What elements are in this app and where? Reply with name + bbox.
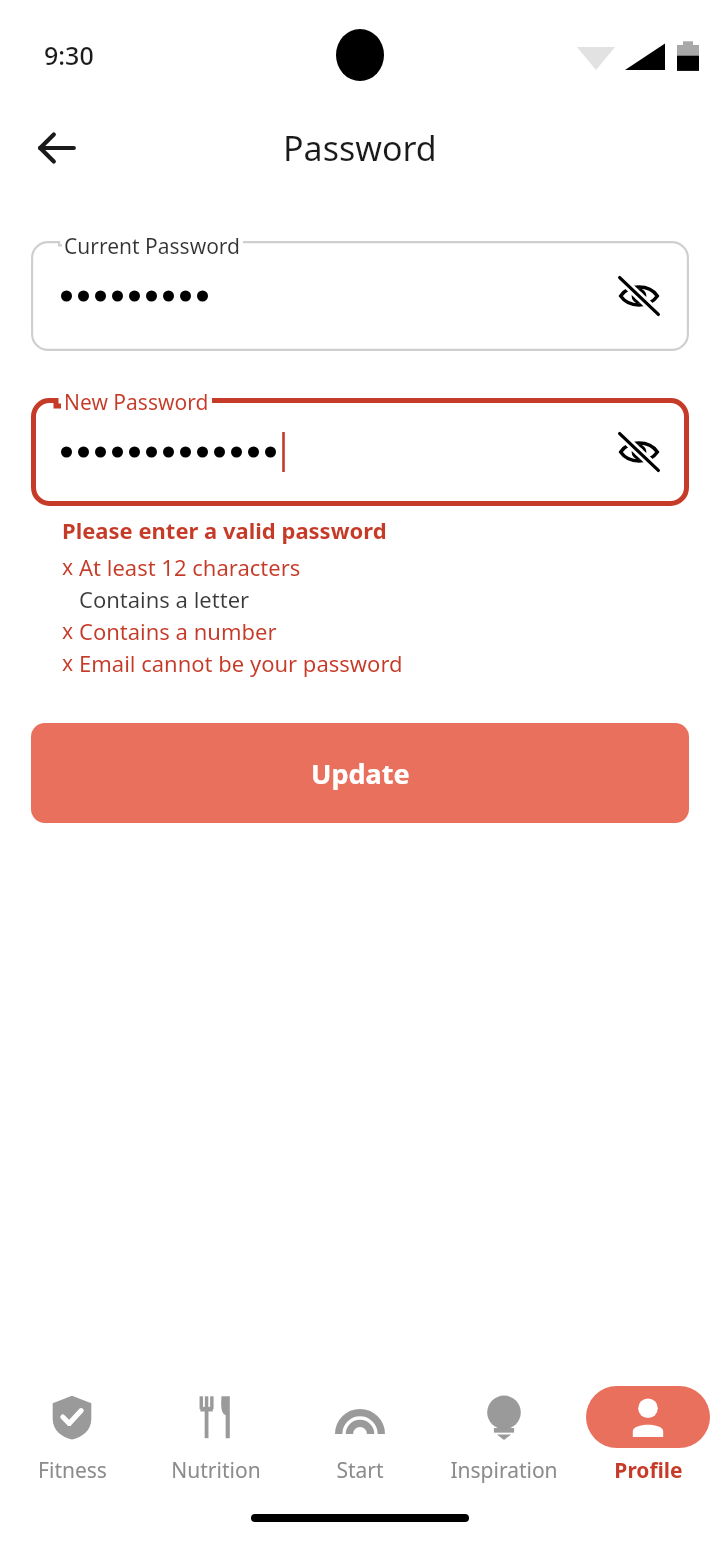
staticText: Inspiration <box>450 1456 558 1485</box>
staticText: At least 12 characters <box>79 552 301 582</box>
button[interactable]: Start <box>288 1370 432 1500</box>
staticText: Nutrition <box>171 1456 261 1485</box>
button[interactable]: Update <box>31 723 689 823</box>
button[interactable]: Hide new password <box>31 398 689 506</box>
staticText: Contains a number <box>79 616 277 646</box>
staticText: x <box>62 649 74 678</box>
button[interactable]: Hide new password <box>609 422 669 482</box>
staticText: Password <box>283 125 437 171</box>
button[interactable]: Fitness <box>0 1370 144 1500</box>
staticText: Please enter a valid password <box>62 515 387 545</box>
staticText: New Password <box>64 388 209 417</box>
staticText: Fitness <box>38 1456 107 1485</box>
staticText: Profile <box>614 1456 683 1485</box>
staticText: 9:30 <box>44 38 94 72</box>
button[interactable]: Hide current password <box>31 241 689 351</box>
staticText: Contains a letter <box>79 584 250 614</box>
staticText: Email cannot be your password <box>79 648 403 678</box>
button[interactable]: Hide current password <box>609 266 669 326</box>
button[interactable]: Back <box>24 115 90 181</box>
staticText: Update <box>311 755 410 792</box>
button[interactable]: Inspiration <box>432 1370 576 1500</box>
button[interactable]: Nutrition <box>144 1370 288 1500</box>
staticText: Start <box>336 1456 384 1485</box>
staticText: x <box>62 617 74 646</box>
button[interactable]: Profile <box>576 1370 720 1500</box>
staticText: x <box>62 553 74 582</box>
staticText: Current Password <box>64 232 241 261</box>
